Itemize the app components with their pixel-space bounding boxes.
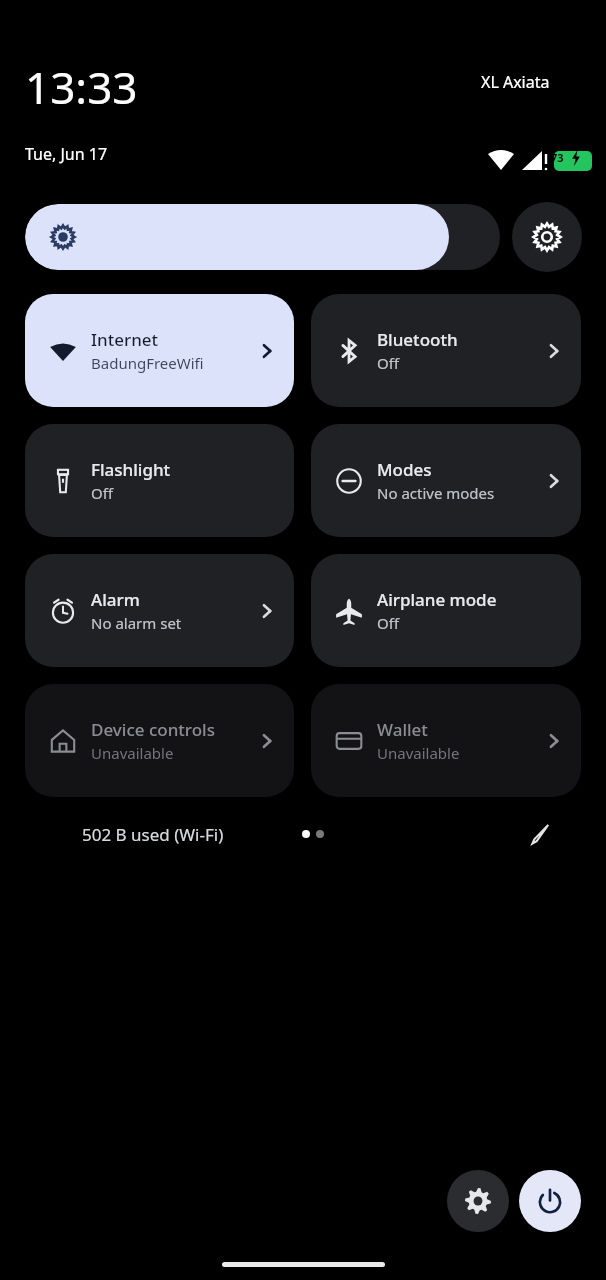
button[interactable]: Auto brightness (512, 202, 582, 272)
staticText: Device controls (91, 718, 215, 741)
staticText: Airplane mode (377, 588, 497, 611)
staticText: Alarm (91, 588, 140, 611)
staticText: Modes (377, 458, 432, 481)
button[interactable]: Flashlight (25, 424, 294, 537)
staticText: Off (91, 483, 114, 503)
staticText: 73 (551, 150, 564, 165)
staticText: 13:33 (25, 57, 138, 117)
staticText: XL Axiata (481, 71, 550, 93)
button[interactable]: Power (519, 1170, 581, 1232)
staticText: Unavailable (91, 743, 174, 763)
staticText: Tue, Jun 17 (25, 143, 108, 165)
staticText: No alarm set (91, 613, 182, 633)
staticText: Unavailable (377, 743, 460, 763)
staticText: Bluetooth (377, 328, 458, 351)
staticText: 502 B used (Wi-Fi) (82, 823, 224, 846)
button[interactable]: Modes (311, 424, 581, 537)
button[interactable]: Edit tiles (521, 814, 561, 854)
button[interactable]: Alarm (25, 554, 294, 667)
button[interactable]: Device controls (25, 684, 294, 797)
button[interactable]: Wallet (311, 684, 581, 797)
staticText: BadungFreeWifi (91, 353, 204, 373)
button[interactable]: Internet (25, 294, 294, 407)
staticText: No active modes (377, 483, 495, 503)
staticText: Off (377, 353, 400, 373)
button[interactable]: Airplane mode (311, 554, 581, 667)
button[interactable]: Settings (447, 1170, 509, 1232)
button[interactable]: Brightness (25, 204, 500, 270)
staticText: Wallet (377, 718, 428, 741)
staticText: Internet (91, 328, 159, 351)
button[interactable]: Bluetooth (311, 294, 581, 407)
staticText: Off (377, 613, 400, 633)
staticText: Flashlight (91, 458, 171, 481)
